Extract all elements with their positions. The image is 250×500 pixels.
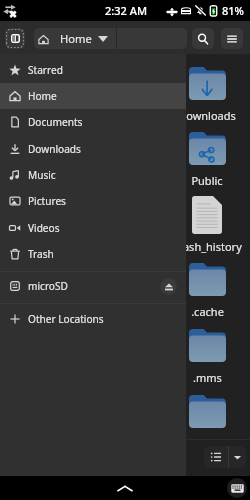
staticText: Starred — [28, 63, 63, 77]
staticText: 81% — [222, 3, 244, 18]
staticText: .bash_history — [173, 239, 242, 254]
button[interactable]: Back — [108, 476, 142, 500]
staticText: Home — [60, 31, 92, 46]
button[interactable]: Pictures — [0, 188, 186, 214]
button[interactable]: .cache — [168, 263, 246, 319]
button[interactable]: microSD — [0, 273, 186, 299]
button[interactable]: Toggle sidebar — [5, 28, 25, 49]
button[interactable]: Menu — [221, 28, 243, 49]
button[interactable]: List view — [204, 446, 228, 468]
staticText: Pictures — [28, 194, 66, 208]
button[interactable]: Other Locations — [0, 306, 186, 332]
staticText: Music — [28, 168, 56, 182]
button[interactable]: .bash_history — [168, 196, 246, 254]
staticText: Downloads — [178, 108, 236, 123]
button[interactable]: Trash — [0, 241, 186, 267]
button[interactable]: Documents — [0, 109, 186, 135]
button[interactable]: Public — [168, 132, 246, 188]
staticText: Public — [191, 173, 223, 188]
button[interactable]: Starred — [0, 57, 186, 83]
button[interactable]: Downloads — [0, 136, 186, 162]
staticText: 2:32 AM — [105, 3, 148, 18]
button[interactable]: Home — [0, 83, 186, 109]
staticText: .mms — [193, 370, 222, 385]
button[interactable]: Eject — [160, 278, 177, 295]
button[interactable]: View options — [229, 446, 246, 468]
button[interactable]: Search — [192, 28, 214, 49]
staticText: microSD — [28, 279, 68, 293]
button[interactable]: .mms — [168, 329, 246, 385]
button[interactable]: Downloads — [168, 67, 246, 123]
button[interactable]: Home — [34, 28, 116, 49]
button[interactable]: Videos — [0, 215, 186, 241]
staticText: Downloads — [28, 142, 81, 156]
button[interactable]: Music — [0, 162, 186, 188]
staticText: Other Locations — [28, 312, 104, 326]
button[interactable] — [168, 395, 246, 451]
staticText: Trash — [28, 247, 54, 261]
staticText: Videos — [28, 221, 60, 235]
staticText: .cache — [191, 304, 224, 319]
staticText: Home — [28, 89, 57, 103]
button[interactable]: Show keyboard — [227, 478, 247, 498]
staticText: Documents — [28, 115, 83, 129]
